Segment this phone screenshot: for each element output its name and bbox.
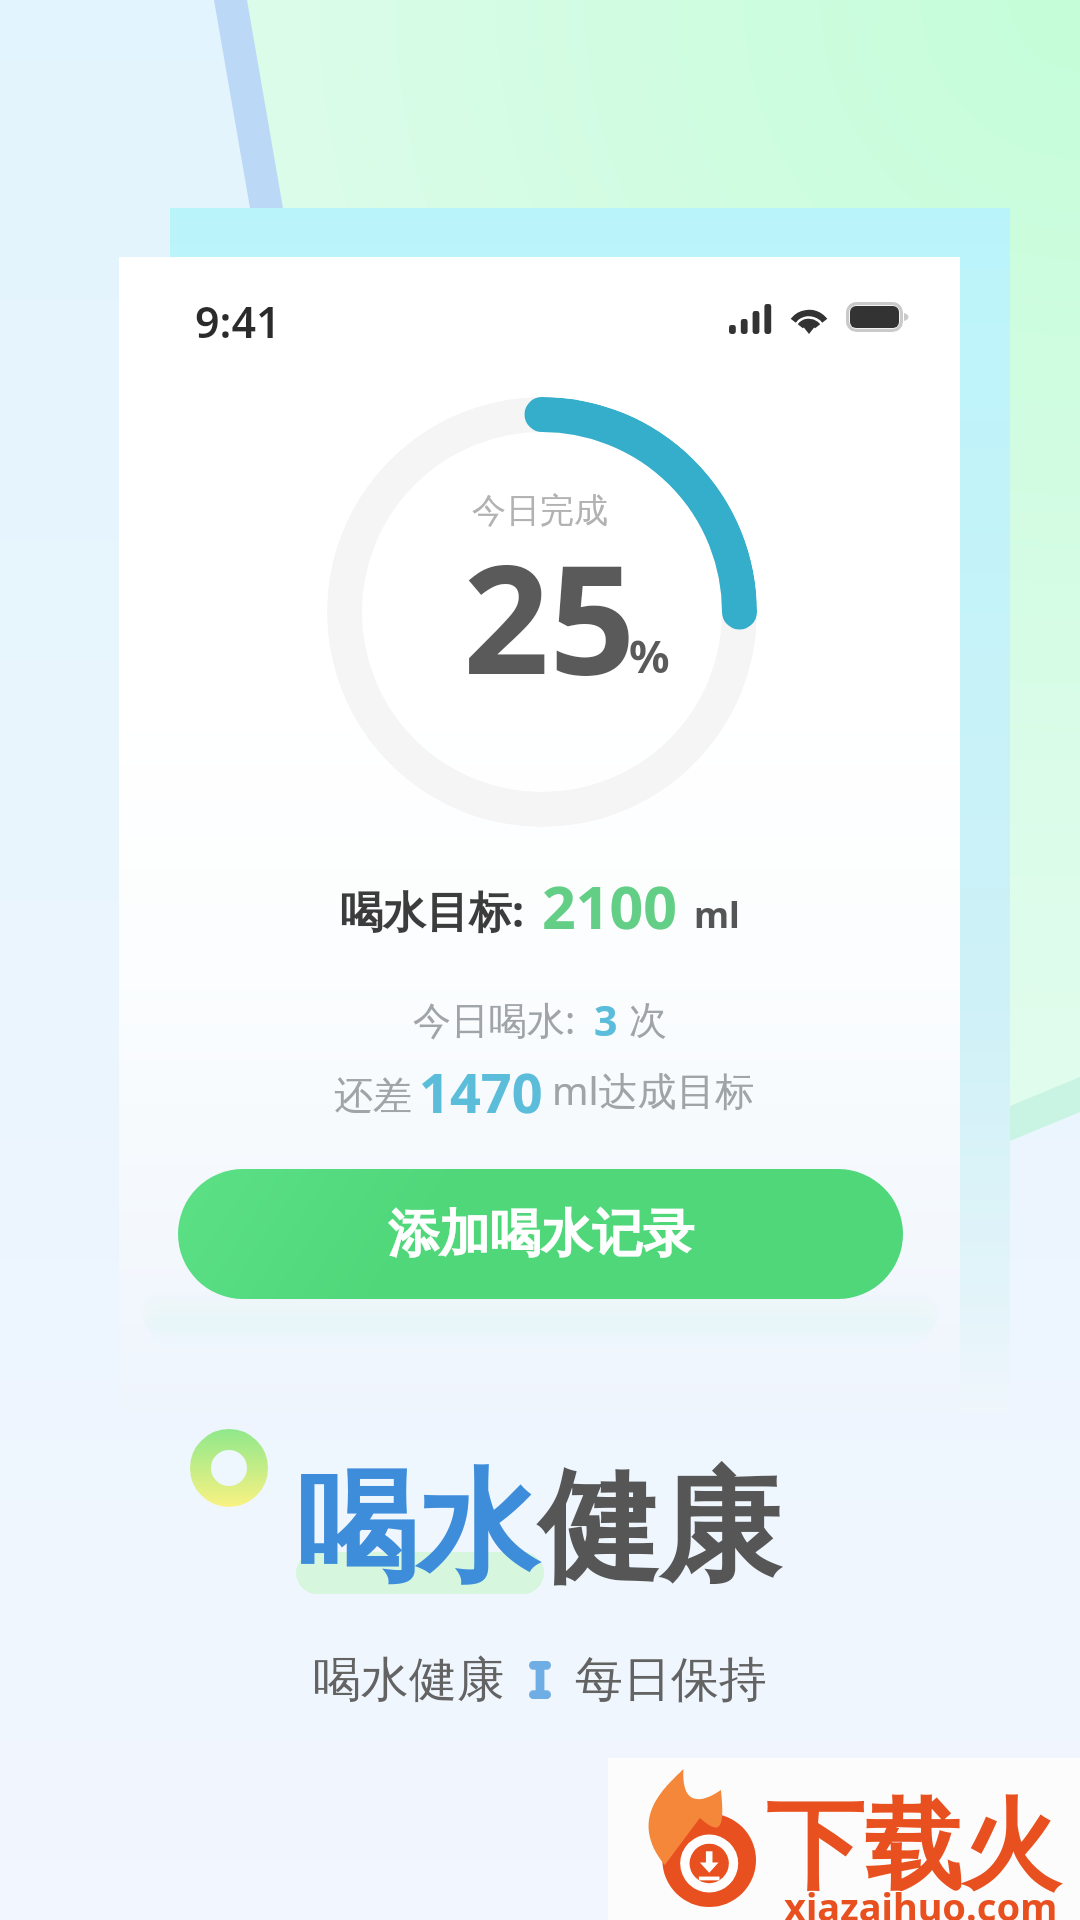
staticText: xiazaihuo.com bbox=[784, 1880, 1058, 1920]
staticText: 今日完成 bbox=[472, 489, 608, 532]
other: Battery bbox=[844, 300, 914, 336]
other: Wi-Fi bbox=[787, 300, 831, 336]
staticText: 9:41 bbox=[195, 292, 281, 351]
staticText: 3 bbox=[594, 992, 618, 1048]
button[interactable]: 添加喝水记录 bbox=[178, 1169, 903, 1299]
staticText: 还差 bbox=[334, 1071, 412, 1120]
staticText: 1470 bbox=[419, 1055, 543, 1129]
staticText: 下载火 bbox=[766, 1785, 1060, 1908]
staticText: 喝水健康 bbox=[296, 1452, 780, 1604]
staticText: 喝水目标: bbox=[340, 881, 525, 940]
staticText: 次 bbox=[629, 996, 667, 1044]
staticText: 今日喝水: bbox=[413, 993, 576, 1045]
staticText: 喝水健康 bbox=[313, 1650, 505, 1710]
other: App logo bbox=[190, 1429, 268, 1507]
staticText: ml bbox=[694, 890, 740, 939]
staticText: 添加喝水记录 bbox=[388, 1202, 694, 1266]
staticText: ml达成目标 bbox=[552, 1063, 755, 1116]
staticText: 每日保持 bbox=[575, 1650, 767, 1710]
staticText: % bbox=[629, 625, 670, 686]
button[interactable]: 今日完成 25% bbox=[327, 397, 757, 827]
other: Cellular signal bbox=[729, 303, 772, 334]
staticText: 2100 bbox=[542, 866, 677, 946]
other: xiazaihuo download logo bbox=[628, 1777, 768, 1907]
staticText: 25 bbox=[463, 513, 636, 719]
